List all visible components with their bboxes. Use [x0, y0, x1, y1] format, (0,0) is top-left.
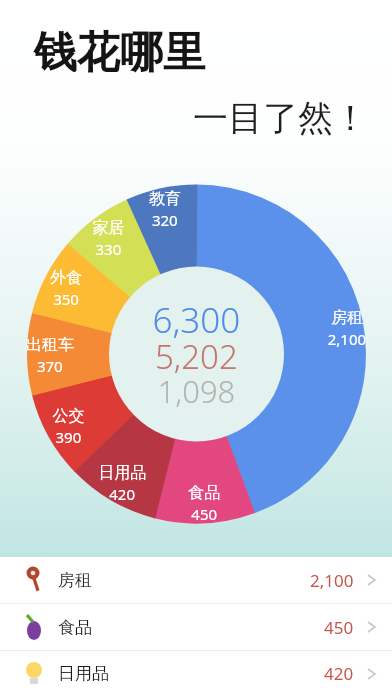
staticText: 2,100: [310, 569, 354, 592]
staticText: 一目了然！: [0, 96, 368, 140]
staticText: 420: [324, 662, 354, 685]
other: 详情: [366, 666, 376, 682]
staticText: 日用品: [58, 663, 109, 684]
staticText: 钱花哪里: [34, 26, 206, 80]
staticText: 房租: [58, 570, 92, 591]
staticText: 食品: [58, 617, 92, 638]
staticText: 450: [324, 616, 354, 639]
button[interactable]: 日用品: [0, 651, 392, 696]
other: 详情: [366, 572, 376, 588]
button[interactable]: 房租: [0, 557, 392, 603]
other: 详情: [366, 619, 376, 635]
button[interactable]: 食品: [0, 604, 392, 650]
